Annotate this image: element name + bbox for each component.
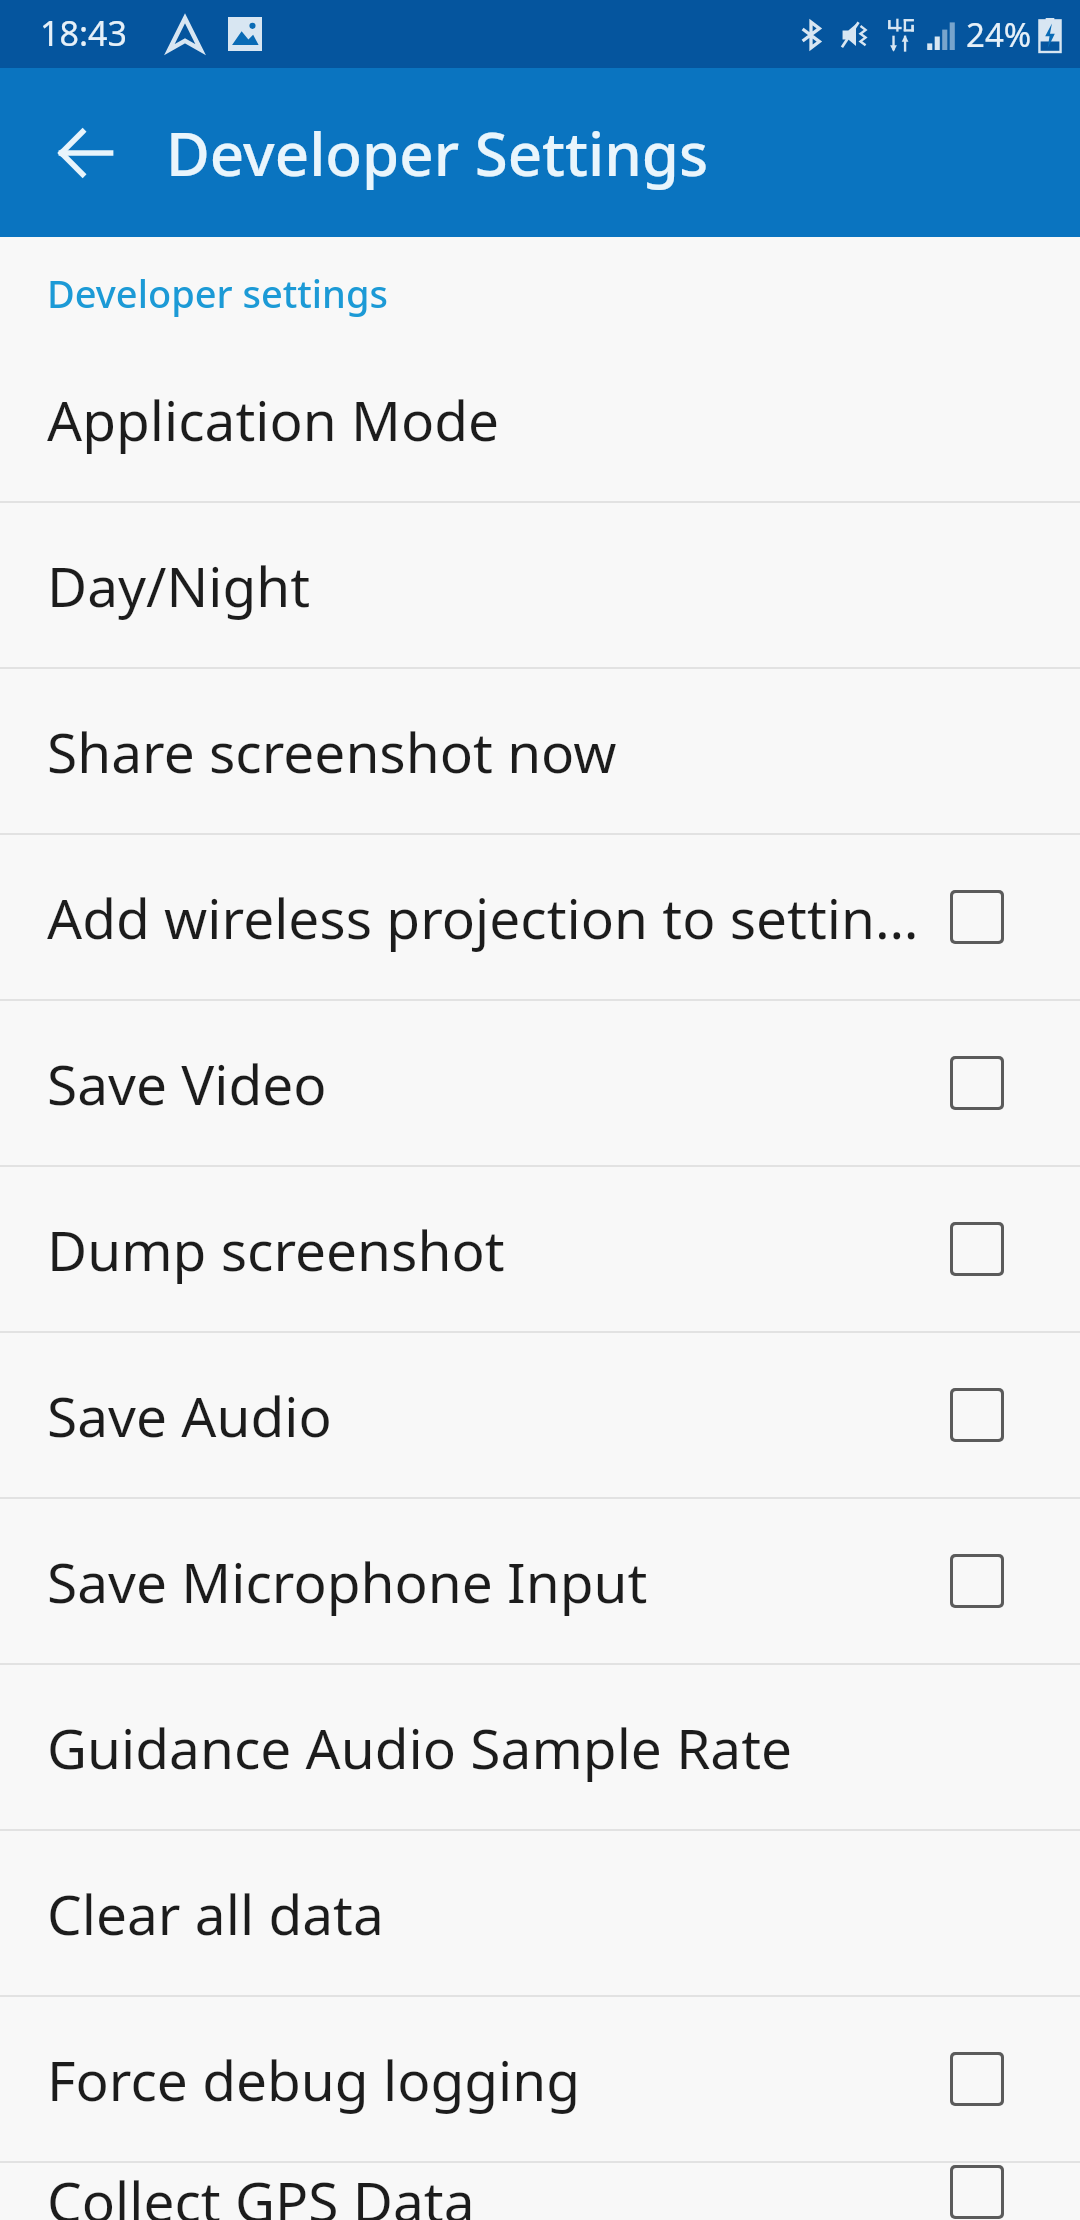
staticText: Application Mode: [47, 382, 1020, 457]
staticText: Day/Night: [47, 548, 1020, 623]
button[interactable]: Save Video checkbox: [934, 1040, 1020, 1126]
staticText: Dump screenshot: [47, 1212, 934, 1287]
button[interactable]: Force debug logging checkbox: [934, 2036, 1020, 2122]
staticText: Developer Settings: [166, 112, 709, 194]
button[interactable]: Application Mode: [0, 337, 1080, 501]
button[interactable]: Dump screenshot checkbox: [934, 1206, 1020, 1292]
button[interactable]: Collect GPS Data checkbox: [934, 2163, 1020, 2220]
button[interactable]: Day/Night: [0, 503, 1080, 667]
button[interactable]: Clear all data: [0, 1831, 1080, 1995]
staticText: Force debug logging: [47, 2042, 934, 2117]
button[interactable]: Save Audio checkbox: [934, 1372, 1020, 1458]
button[interactable]: Guidance Audio Sample Rate: [0, 1665, 1080, 1829]
staticText: 24%: [966, 12, 1032, 57]
staticText: Collect GPS Data: [47, 2163, 934, 2220]
button[interactable]: Add wireless projection to settings: [0, 835, 1080, 999]
button[interactable]: Save Microphone Input checkbox: [934, 1538, 1020, 1624]
staticText: Clear all data: [47, 1876, 1020, 1951]
staticText: Save Audio: [47, 1378, 934, 1453]
staticText: Guidance Audio Sample Rate: [47, 1710, 1020, 1785]
button[interactable]: Back: [38, 105, 134, 201]
button[interactable]: Save Video: [0, 1001, 1080, 1165]
button[interactable]: Collect GPS Data: [0, 2163, 1080, 2220]
staticText: Save Microphone Input: [47, 1544, 934, 1619]
button[interactable]: Force debug logging: [0, 1997, 1080, 2161]
staticText: 18:43: [40, 10, 127, 56]
button[interactable]: Save Audio: [0, 1333, 1080, 1497]
button[interactable]: Save Microphone Input: [0, 1499, 1080, 1663]
button[interactable]: Dump screenshot: [0, 1167, 1080, 1331]
button[interactable]: Add wireless projection to settings chec…: [934, 874, 1020, 960]
staticText: Developer settings: [47, 267, 388, 319]
staticText: Share screenshot now: [47, 714, 1020, 789]
staticText: Add wireless projection to settings: [47, 880, 934, 955]
button[interactable]: Share screenshot now: [0, 669, 1080, 833]
staticText: Save Video: [47, 1046, 934, 1121]
